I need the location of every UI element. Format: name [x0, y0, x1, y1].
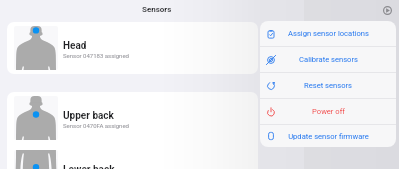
- staticText: Update sensor firmware: [288, 132, 369, 141]
- button[interactable]: Head: [7, 22, 258, 74]
- staticText: Sensors: [142, 5, 172, 14]
- staticText: Calibrate sensors: [299, 55, 358, 64]
- staticText: Power off: [312, 107, 345, 116]
- button[interactable]: Upper back: [7, 92, 258, 146]
- button[interactable]: Lower back: [7, 146, 258, 169]
- button[interactable]: Update sensor firmware: [260, 125, 396, 147]
- staticText: Sensor 047183 assigned: [63, 52, 129, 59]
- staticText: Assign sensor locations: [288, 29, 369, 38]
- staticText: Lower back: [63, 164, 115, 169]
- staticText: Sensor 0470FA assigned: [63, 122, 129, 129]
- staticText: Reset sensors: [304, 81, 352, 90]
- button[interactable]: Power off: [260, 99, 396, 124]
- button[interactable]: Assign sensor locations: [260, 21, 396, 46]
- staticText: Upper back: [63, 110, 114, 122]
- button[interactable]: Calibrate sensors: [260, 47, 396, 72]
- staticText: Head: [63, 40, 87, 52]
- button[interactable]: Reset sensors: [260, 73, 396, 98]
